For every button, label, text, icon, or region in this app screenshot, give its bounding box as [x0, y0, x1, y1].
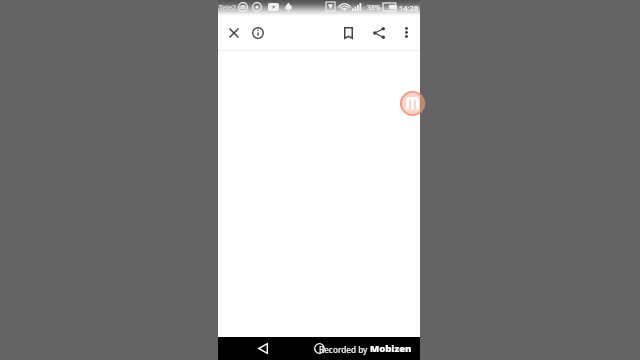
staticText: Recorded by: [319, 344, 368, 355]
button[interactable]: More options: [395, 21, 418, 44]
staticText: 14:28: [399, 3, 419, 13]
staticText: Mobizen: [370, 342, 412, 355]
button[interactable]: Back: [251, 337, 275, 360]
staticText: 38%: [367, 3, 381, 13]
staticText: Tele2: [219, 3, 237, 13]
button[interactable]: Bookmark: [337, 21, 360, 44]
button[interactable]: Info: [246, 21, 269, 44]
button[interactable]: Share: [367, 21, 390, 44]
button[interactable]: Close: [222, 21, 245, 44]
